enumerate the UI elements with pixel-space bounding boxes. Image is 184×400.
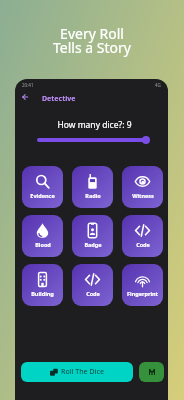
staticText: Building xyxy=(31,290,54,297)
button[interactable]: Code xyxy=(72,264,113,306)
staticText: Code xyxy=(86,290,100,297)
staticText: 20:41 xyxy=(22,82,34,88)
button[interactable]: Back xyxy=(18,88,32,106)
button[interactable]: Fingerprint xyxy=(122,264,163,306)
staticText: 4G xyxy=(155,82,161,88)
staticText: Detective xyxy=(42,94,76,104)
button[interactable]: Save xyxy=(139,362,164,382)
staticText: Badge xyxy=(84,241,102,248)
staticText: Code xyxy=(136,241,150,248)
button[interactable]: Badge xyxy=(72,215,113,257)
staticText: Evidence xyxy=(30,192,55,199)
button[interactable]: Witness xyxy=(122,166,163,208)
button[interactable]: Radio xyxy=(72,166,113,208)
button[interactable]: Dice count slider xyxy=(33,134,153,146)
button[interactable]: Roll The Dice xyxy=(21,362,133,382)
button[interactable]: Code xyxy=(122,215,163,257)
staticText: Every Roll Tells a Story xyxy=(0,24,184,57)
button[interactable]: Building xyxy=(22,264,63,306)
staticText: Radio xyxy=(85,192,101,199)
staticText: Fingerprint xyxy=(127,290,158,297)
staticText: Blood xyxy=(35,241,51,248)
staticText: Witness xyxy=(132,192,154,199)
button[interactable]: Blood xyxy=(22,215,63,257)
button[interactable]: Evidence xyxy=(22,166,63,208)
staticText: How many dice?: 9 xyxy=(18,119,168,131)
staticText: Roll The Dice xyxy=(61,367,104,377)
